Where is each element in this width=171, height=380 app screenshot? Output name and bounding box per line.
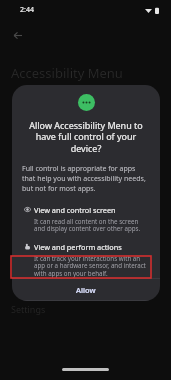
button[interactable]: Allow [12,279,160,300]
staticText: View and control screen [34,205,116,215]
staticText: Allow [76,285,96,295]
staticText: Accessibility Menu [11,64,123,82]
button[interactable]: Back [8,26,26,44]
staticText: It can read all content on the screen an… [34,217,150,233]
staticText: 2:44 [20,5,34,15]
staticText: Settings [11,303,46,315]
staticText: View and perform actions [34,242,122,252]
staticText: Full control is appropriate for apps tha… [22,164,150,194]
staticText: It can track your interactions with an a… [34,254,150,278]
staticText: Allow Accessibility Menu to have full co… [21,119,151,155]
